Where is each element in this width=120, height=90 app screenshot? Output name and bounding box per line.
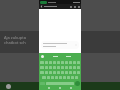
button[interactable]: Key: [69, 61, 72, 64]
button[interactable]: Key: [51, 76, 54, 79]
button[interactable]: Key: [49, 71, 52, 74]
button[interactable]: [43, 43, 77, 47]
button[interactable]: Key: [61, 61, 64, 64]
button[interactable]: Key: [53, 71, 56, 74]
button[interactable]: Key: [61, 66, 64, 69]
button[interactable]: Key: [42, 76, 46, 79]
button[interactable]: Key: [67, 76, 70, 79]
button[interactable]: Key: [45, 61, 48, 64]
button[interactable]: Key: [75, 76, 78, 79]
button[interactable]: Key: [45, 66, 48, 69]
button[interactable]: Key: [69, 71, 72, 74]
button[interactable]: Send: [75, 81, 80, 86]
button[interactable]: Key: [57, 71, 60, 74]
button[interactable]: Profile: [6, 84, 11, 89]
button[interactable]: Key: [40, 71, 44, 74]
button[interactable]: Key: [73, 71, 76, 74]
button[interactable]: Aja zukupta: [0, 31, 120, 53]
button[interactable]: Key: [77, 61, 80, 64]
button[interactable]: Key: [73, 66, 76, 69]
button[interactable]: Back: [40, 5, 43, 8]
button[interactable]: Key: [77, 71, 80, 74]
button[interactable]: Key: [57, 66, 60, 69]
button[interactable]: Key: [40, 61, 44, 64]
staticText: chatbot sch: [4, 40, 26, 45]
button[interactable]: Key: [61, 71, 64, 74]
button[interactable]: Key: [40, 66, 44, 69]
button[interactable]: Google: [41, 55, 44, 58]
button[interactable]: Key: [65, 61, 68, 64]
button[interactable]: Key: [77, 66, 80, 69]
button[interactable]: Key: [69, 66, 72, 69]
button[interactable]: Key: [63, 76, 66, 79]
button[interactable]: Key: [65, 71, 68, 74]
staticText: Aja zukupta: [4, 35, 26, 40]
button[interactable]: Key: [55, 76, 58, 79]
button[interactable]: Key: [73, 61, 76, 64]
button[interactable]: Key: [53, 66, 56, 69]
button[interactable]: Key: [45, 71, 48, 74]
button[interactable]: Key: [59, 76, 62, 79]
button[interactable]: Key: [49, 61, 52, 64]
button[interactable]: Key: [49, 66, 52, 69]
button[interactable]: Key: [47, 76, 50, 79]
button[interactable]: Key: [71, 76, 74, 79]
button[interactable]: Key: [65, 66, 68, 69]
button[interactable]: Key: [53, 61, 56, 64]
button[interactable]: Key: [57, 61, 60, 64]
